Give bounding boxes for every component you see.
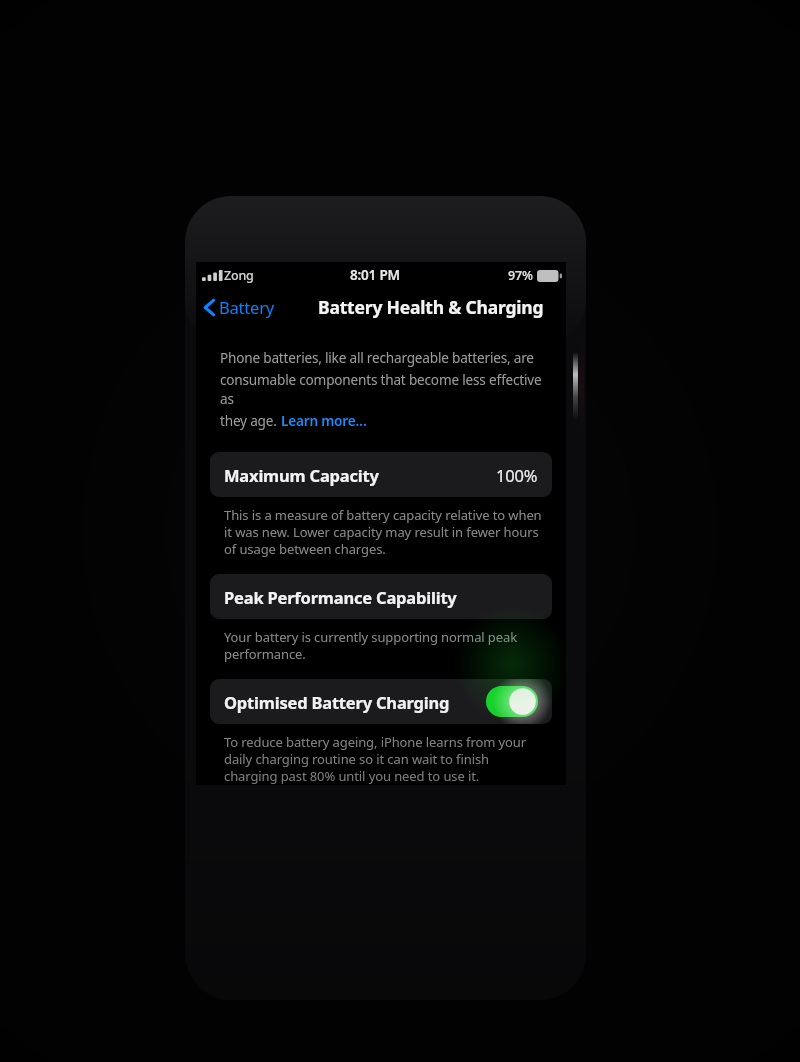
button[interactable]: Maximum Capacity [210, 452, 552, 497]
button[interactable]: Optimised Battery Charging toggle, on [486, 686, 538, 717]
staticText: Phone batteries, like all rechargeable b… [220, 348, 534, 367]
button[interactable]: Battery [196, 293, 281, 321]
staticText: 100% [496, 464, 538, 486]
staticText: Learn more… [281, 411, 367, 430]
staticText: Maximum Capacity [224, 464, 379, 486]
button[interactable]: Peak Performance Capability [210, 574, 552, 619]
staticText: they age. [220, 411, 281, 430]
staticText: Optimised Battery Charging [224, 691, 450, 713]
staticText: To reduce battery ageing, iPhone learns … [224, 733, 542, 785]
staticText: This is a measure of battery capacity re… [224, 506, 542, 558]
button[interactable]: Optimised Battery Charging [210, 679, 552, 724]
staticText: Your battery is currently supporting nor… [224, 628, 542, 663]
staticText: Battery Health & Charging [318, 295, 544, 319]
staticText: Battery [219, 296, 275, 318]
staticText: Peak Performance Capability [224, 586, 457, 608]
staticText: 8:01 PM [350, 266, 400, 284]
staticText: Zong [224, 267, 254, 284]
staticText: 97% [508, 267, 533, 284]
button[interactable]: Learn more… [281, 411, 367, 430]
staticText: consumable components that become less e… [220, 370, 546, 408]
